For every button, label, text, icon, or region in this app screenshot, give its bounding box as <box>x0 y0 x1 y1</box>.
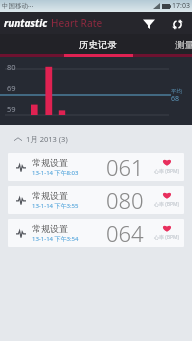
staticText: 测量 <box>175 39 192 51</box>
staticText: 17:03 <box>172 1 190 11</box>
button[interactable]: 历史记录 <box>64 34 132 57</box>
button[interactable]: Filter <box>135 12 163 34</box>
button[interactable]: 常规设置 <box>8 186 184 214</box>
staticText: 80 <box>7 62 16 72</box>
staticText: 心率 (BPM) <box>154 234 180 241</box>
staticText: 1月 2013 (3) <box>26 134 68 144</box>
staticText: 常规设置 <box>32 190 68 201</box>
staticText: 常规设置 <box>32 157 68 168</box>
staticText: 13-1-14 下午3:54 <box>32 235 79 243</box>
staticText: runtastic <box>4 16 47 30</box>
staticText: 69 <box>7 83 16 93</box>
staticText: 13-1-14 下午8:03 <box>32 169 79 177</box>
staticText: 59 <box>7 104 16 114</box>
staticText: 平均 <box>171 88 182 95</box>
staticText: 心率 (BPM) <box>154 168 180 175</box>
button[interactable]: 常规设置 <box>8 153 184 181</box>
staticText: 064 <box>106 219 144 246</box>
staticText: ··· <box>28 2 34 11</box>
staticText: 心率 (BPM) <box>154 201 180 208</box>
staticText: 061 <box>106 153 144 180</box>
staticText: 中国移动 <box>2 2 28 10</box>
button[interactable]: 1月 2013 (3) <box>0 125 192 153</box>
staticText: Heart Rate <box>51 16 103 30</box>
button[interactable]: Refresh <box>163 12 191 34</box>
staticText: 68 <box>171 94 180 104</box>
staticText: 常规设置 <box>32 223 68 234</box>
staticText: 080 <box>106 186 144 213</box>
staticText: 历史记录 <box>79 39 117 51</box>
button[interactable]: 测量 <box>160 34 192 57</box>
button[interactable]: 常规设置 <box>8 219 184 247</box>
staticText: 13-1-14 下午3:55 <box>32 202 79 210</box>
